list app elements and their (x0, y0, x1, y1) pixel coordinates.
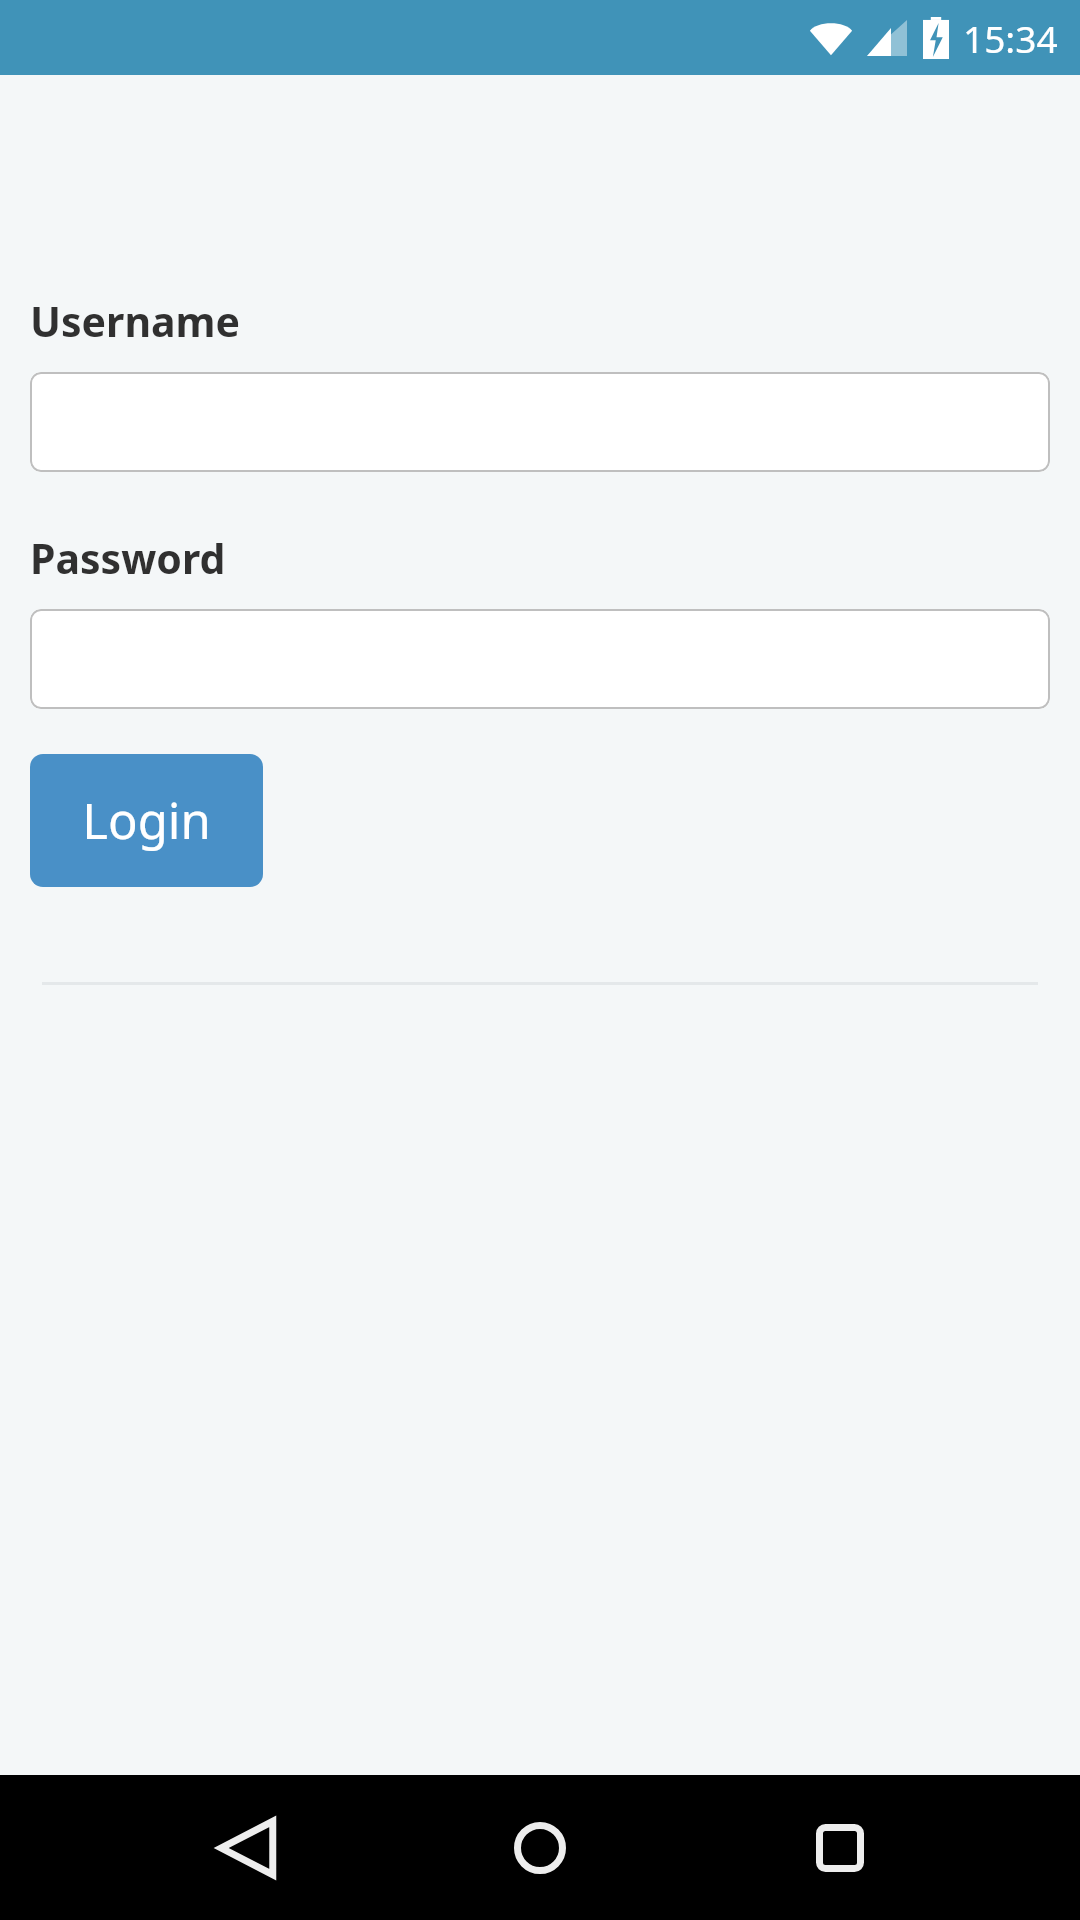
button[interactable]: Back (187, 1788, 307, 1908)
staticText: 15:34 (963, 13, 1058, 63)
button[interactable]: Home (480, 1788, 600, 1908)
staticText: Login (82, 787, 211, 854)
staticText: Username (30, 293, 241, 349)
staticText: Password (30, 530, 226, 586)
button[interactable] (30, 609, 1050, 709)
button[interactable]: Recent apps (780, 1788, 900, 1908)
button[interactable] (30, 372, 1050, 472)
button[interactable]: Login (30, 754, 263, 887)
